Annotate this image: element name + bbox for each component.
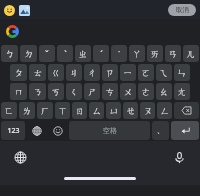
button[interactable]: ㄗ bbox=[102, 64, 118, 81]
button[interactable]: ˋ bbox=[57, 45, 73, 62]
button[interactable]: Image bbox=[18, 4, 30, 16]
staticText: ㄊ bbox=[33, 67, 43, 78]
button[interactable]: Emoji bbox=[3, 4, 15, 16]
button[interactable]: ㄎ bbox=[48, 83, 64, 100]
button[interactable]: ㄟ bbox=[156, 64, 172, 81]
button[interactable]: Voice input bbox=[172, 150, 187, 165]
staticText: ˊ bbox=[100, 48, 103, 60]
staticText: ㄉ bbox=[24, 48, 34, 59]
button[interactable]: ㄅ bbox=[1, 45, 18, 62]
button[interactable]: Emoji bbox=[48, 121, 67, 140]
staticText: ㄜ bbox=[141, 86, 151, 97]
button[interactable]: ㄘ bbox=[102, 83, 118, 100]
staticText: ㄅ bbox=[5, 48, 15, 59]
staticText: ㄒ bbox=[58, 105, 68, 116]
button[interactable]: ㄥ bbox=[157, 102, 172, 119]
staticText: ㄌ bbox=[22, 105, 32, 116]
button[interactable]: Change keyboard language bbox=[27, 121, 46, 140]
button[interactable]: ㄈ bbox=[1, 102, 17, 119]
button[interactable]: 123 bbox=[1, 121, 25, 140]
button[interactable]: ˙ bbox=[111, 45, 127, 62]
staticText: ㄖ bbox=[75, 105, 85, 116]
staticText: ㄎ bbox=[51, 86, 61, 97]
staticText: ㄇ bbox=[14, 86, 24, 97]
button[interactable]: ㄧ bbox=[120, 64, 136, 81]
staticText: ㄋ bbox=[33, 86, 43, 97]
button[interactable]: ㄊ bbox=[29, 64, 46, 81]
staticText: ㄝ bbox=[126, 105, 136, 116]
button[interactable]: Enter bbox=[171, 121, 199, 140]
staticText: ㄑ bbox=[69, 86, 79, 97]
button[interactable]: ˇ bbox=[39, 45, 55, 62]
button[interactable]: ㄆ bbox=[10, 64, 27, 81]
staticText: ㄡ bbox=[143, 105, 153, 116]
staticText: ㄧ bbox=[123, 67, 133, 78]
staticText: ㄞ bbox=[150, 48, 160, 59]
staticText: ㄟ bbox=[159, 67, 169, 78]
button[interactable]: ㄇ bbox=[10, 83, 27, 100]
button[interactable]: ㄓ bbox=[75, 45, 91, 62]
button[interactable]: ㄌ bbox=[19, 102, 35, 119]
staticText: ˙ bbox=[118, 48, 120, 60]
staticText: ㄠ bbox=[159, 86, 169, 97]
button[interactable]: ㄨ bbox=[120, 83, 136, 100]
button[interactable]: 取消 bbox=[168, 4, 196, 16]
button[interactable]: ㄚ bbox=[129, 45, 145, 62]
staticText: ㄙ bbox=[92, 105, 102, 116]
staticText: ㄍ bbox=[51, 67, 61, 78]
button[interactable]: ㄝ bbox=[123, 102, 138, 119]
button[interactable]: ㄠ bbox=[156, 83, 172, 100]
staticText: ㄗ bbox=[105, 67, 115, 78]
button[interactable]: ㄤ bbox=[174, 83, 190, 100]
staticText: ㄆ bbox=[14, 67, 24, 78]
button[interactable]: ㄣ bbox=[174, 64, 190, 81]
button[interactable]: ㄙ bbox=[89, 102, 104, 119]
button[interactable]: ㄉ bbox=[20, 45, 37, 62]
staticText: ㄘ bbox=[105, 86, 115, 97]
staticText: ㄔ bbox=[87, 67, 97, 78]
button[interactable]: ㄑ bbox=[66, 83, 82, 100]
staticText: ㄈ bbox=[4, 105, 14, 116]
staticText: 空格 bbox=[103, 126, 117, 135]
staticText: ㄩ bbox=[109, 105, 119, 116]
button[interactable]: 、 bbox=[152, 121, 169, 140]
button[interactable]: ˊ bbox=[93, 45, 109, 62]
staticText: ㄏ bbox=[40, 105, 50, 116]
staticText: ㄓ bbox=[78, 48, 88, 59]
staticText: ㄢ bbox=[168, 48, 178, 59]
button[interactable]: ㄔ bbox=[84, 64, 100, 81]
button[interactable]: ㄏ bbox=[37, 102, 53, 119]
staticText: ㄐ bbox=[69, 67, 79, 78]
button[interactable]: Backspace bbox=[174, 102, 199, 119]
button[interactable]: ㄦ bbox=[183, 45, 199, 62]
button[interactable]: Google bbox=[5, 24, 20, 39]
button[interactable]: ㄜ bbox=[138, 83, 154, 100]
button[interactable]: 空格 bbox=[69, 121, 150, 140]
staticText: ㄦ bbox=[186, 48, 196, 59]
staticText: 123 bbox=[7, 126, 20, 136]
button[interactable]: ㄍ bbox=[48, 64, 64, 81]
staticText: ㄣ bbox=[177, 67, 187, 78]
button[interactable]: ㄕ bbox=[84, 83, 100, 100]
button[interactable]: ㄐ bbox=[66, 64, 82, 81]
button[interactable]: ㄋ bbox=[29, 83, 46, 100]
staticText: ㄛ bbox=[141, 67, 151, 78]
staticText: ㄥ bbox=[160, 105, 170, 116]
button[interactable]: ㄛ bbox=[138, 64, 154, 81]
button[interactable]: ㄢ bbox=[165, 45, 181, 62]
staticText: ˇ bbox=[45, 48, 49, 60]
staticText: 、 bbox=[157, 126, 164, 135]
staticText: ㄤ bbox=[177, 86, 187, 97]
button[interactable]: ㄡ bbox=[140, 102, 155, 119]
staticText: ㄚ bbox=[132, 48, 142, 59]
staticText: 取消 bbox=[176, 6, 189, 14]
button[interactable]: ㄒ bbox=[55, 102, 70, 119]
button[interactable]: ㄩ bbox=[106, 102, 121, 119]
staticText: ㄕ bbox=[87, 86, 97, 97]
button[interactable]: ㄖ bbox=[72, 102, 87, 119]
staticText: ㄨ bbox=[123, 86, 133, 97]
button[interactable]: Language bbox=[13, 150, 28, 165]
staticText: ˋ bbox=[64, 48, 67, 60]
button[interactable]: ㄞ bbox=[147, 45, 163, 62]
